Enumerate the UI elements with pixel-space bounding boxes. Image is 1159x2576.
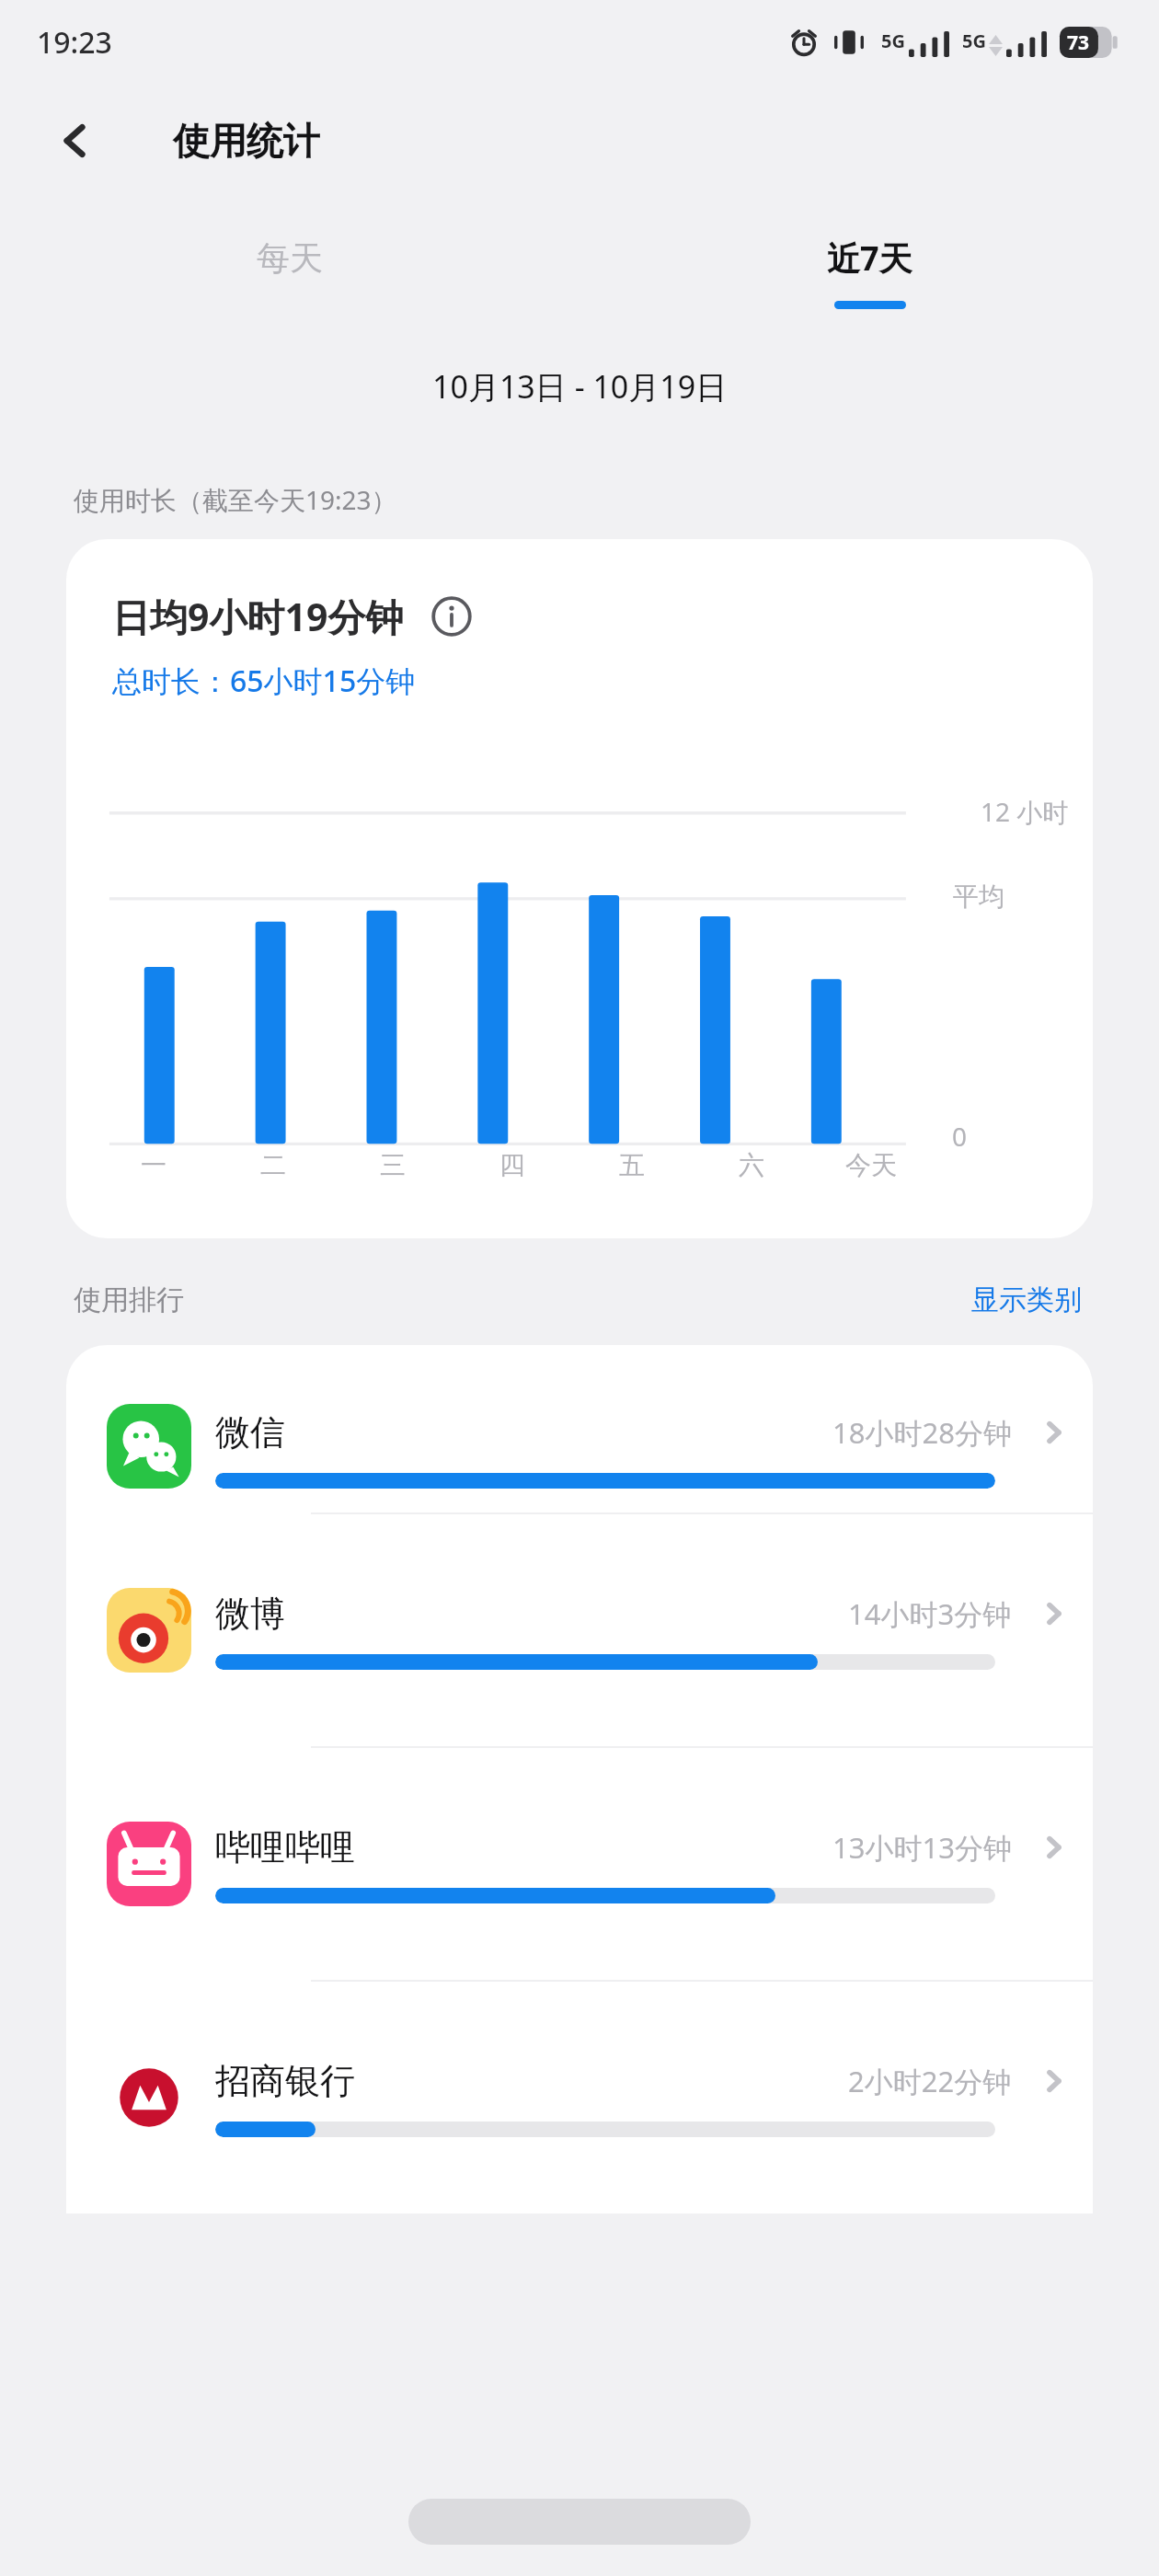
staticText: 平均 bbox=[953, 880, 1004, 913]
button[interactable]: 微信 bbox=[66, 1345, 1093, 1512]
staticText: 使用统计 bbox=[173, 118, 320, 164]
staticText: 2小时22分钟 bbox=[848, 2062, 1012, 2100]
staticText: 12 小时 bbox=[981, 794, 1069, 829]
staticText: 13小时13分钟 bbox=[832, 1828, 1012, 1867]
staticText: 招商银行 bbox=[215, 2059, 355, 2103]
staticText: 二 bbox=[260, 1149, 286, 1181]
staticText: 日均9小时19分钟 bbox=[112, 591, 404, 642]
button[interactable]: Back bbox=[40, 106, 110, 176]
staticText: 14小时3分钟 bbox=[848, 1594, 1012, 1633]
button[interactable]: 每天 bbox=[0, 197, 579, 335]
staticText: 显示类别 bbox=[971, 1282, 1082, 1317]
staticText: 哔哩哔哩 bbox=[215, 1825, 355, 1869]
staticText: 使用时长（截至今天19:23） bbox=[74, 482, 397, 517]
staticText: 5G bbox=[881, 29, 905, 53]
staticText: 五 bbox=[619, 1149, 645, 1181]
staticText: 73 bbox=[1067, 29, 1090, 56]
button[interactable]: 微博 bbox=[66, 1514, 1093, 1746]
staticText: 微信 bbox=[215, 1410, 285, 1455]
button[interactable]: Info bbox=[428, 592, 476, 640]
staticText: 使用排行 bbox=[74, 1282, 184, 1317]
staticText: 每天 bbox=[257, 237, 323, 279]
staticText: 三 bbox=[380, 1149, 406, 1181]
staticText: 六 bbox=[739, 1149, 764, 1181]
button[interactable]: 近7天 bbox=[579, 197, 1159, 335]
staticText: 微博 bbox=[215, 1592, 285, 1636]
staticText: 今天 bbox=[845, 1149, 897, 1181]
staticText: 18小时28分钟 bbox=[832, 1413, 1012, 1452]
button[interactable]: 哔哩哔哩 bbox=[66, 1748, 1093, 1980]
staticText: 5G bbox=[962, 29, 986, 53]
staticText: 四 bbox=[499, 1149, 525, 1181]
staticText: 一 bbox=[141, 1149, 166, 1181]
staticText: 近7天 bbox=[827, 236, 912, 281]
staticText: 总时长：65小时15分钟 bbox=[112, 661, 416, 701]
button[interactable]: 招商银行 bbox=[66, 1982, 1093, 2214]
button[interactable]: 显示类别 bbox=[968, 1279, 1085, 1321]
staticText: 10月13日 - 10月19日 bbox=[432, 365, 728, 408]
staticText: 0 bbox=[952, 1119, 968, 1154]
staticText: 19:23 bbox=[37, 22, 112, 63]
